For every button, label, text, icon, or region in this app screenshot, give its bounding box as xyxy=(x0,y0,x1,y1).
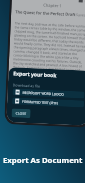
staticText: Chapter 1 xyxy=(11,1,85,10)
button[interactable]: CLOSE xyxy=(11,108,31,118)
staticText: Download as file xyxy=(13,82,41,89)
staticText: Saved xyxy=(76,12,85,17)
staticText: The next day, Jedi was at the cafe befor… xyxy=(13,21,85,71)
staticText: FORMATTED TEXT (.RTF) xyxy=(22,100,58,105)
staticText: CLOSE xyxy=(15,110,27,116)
staticText: The Quest for the Perfect Draft xyxy=(15,9,76,17)
staticText: Export As Document xyxy=(3,155,83,166)
button[interactable]: MICROSOFT WORD (.DOCX) xyxy=(12,88,85,99)
button[interactable]: FORMATTED TEXT (.RTF) xyxy=(12,97,84,108)
staticText: Export your book xyxy=(13,70,56,79)
staticText: MICROSOFT WORD (.DOCX) xyxy=(22,91,63,97)
